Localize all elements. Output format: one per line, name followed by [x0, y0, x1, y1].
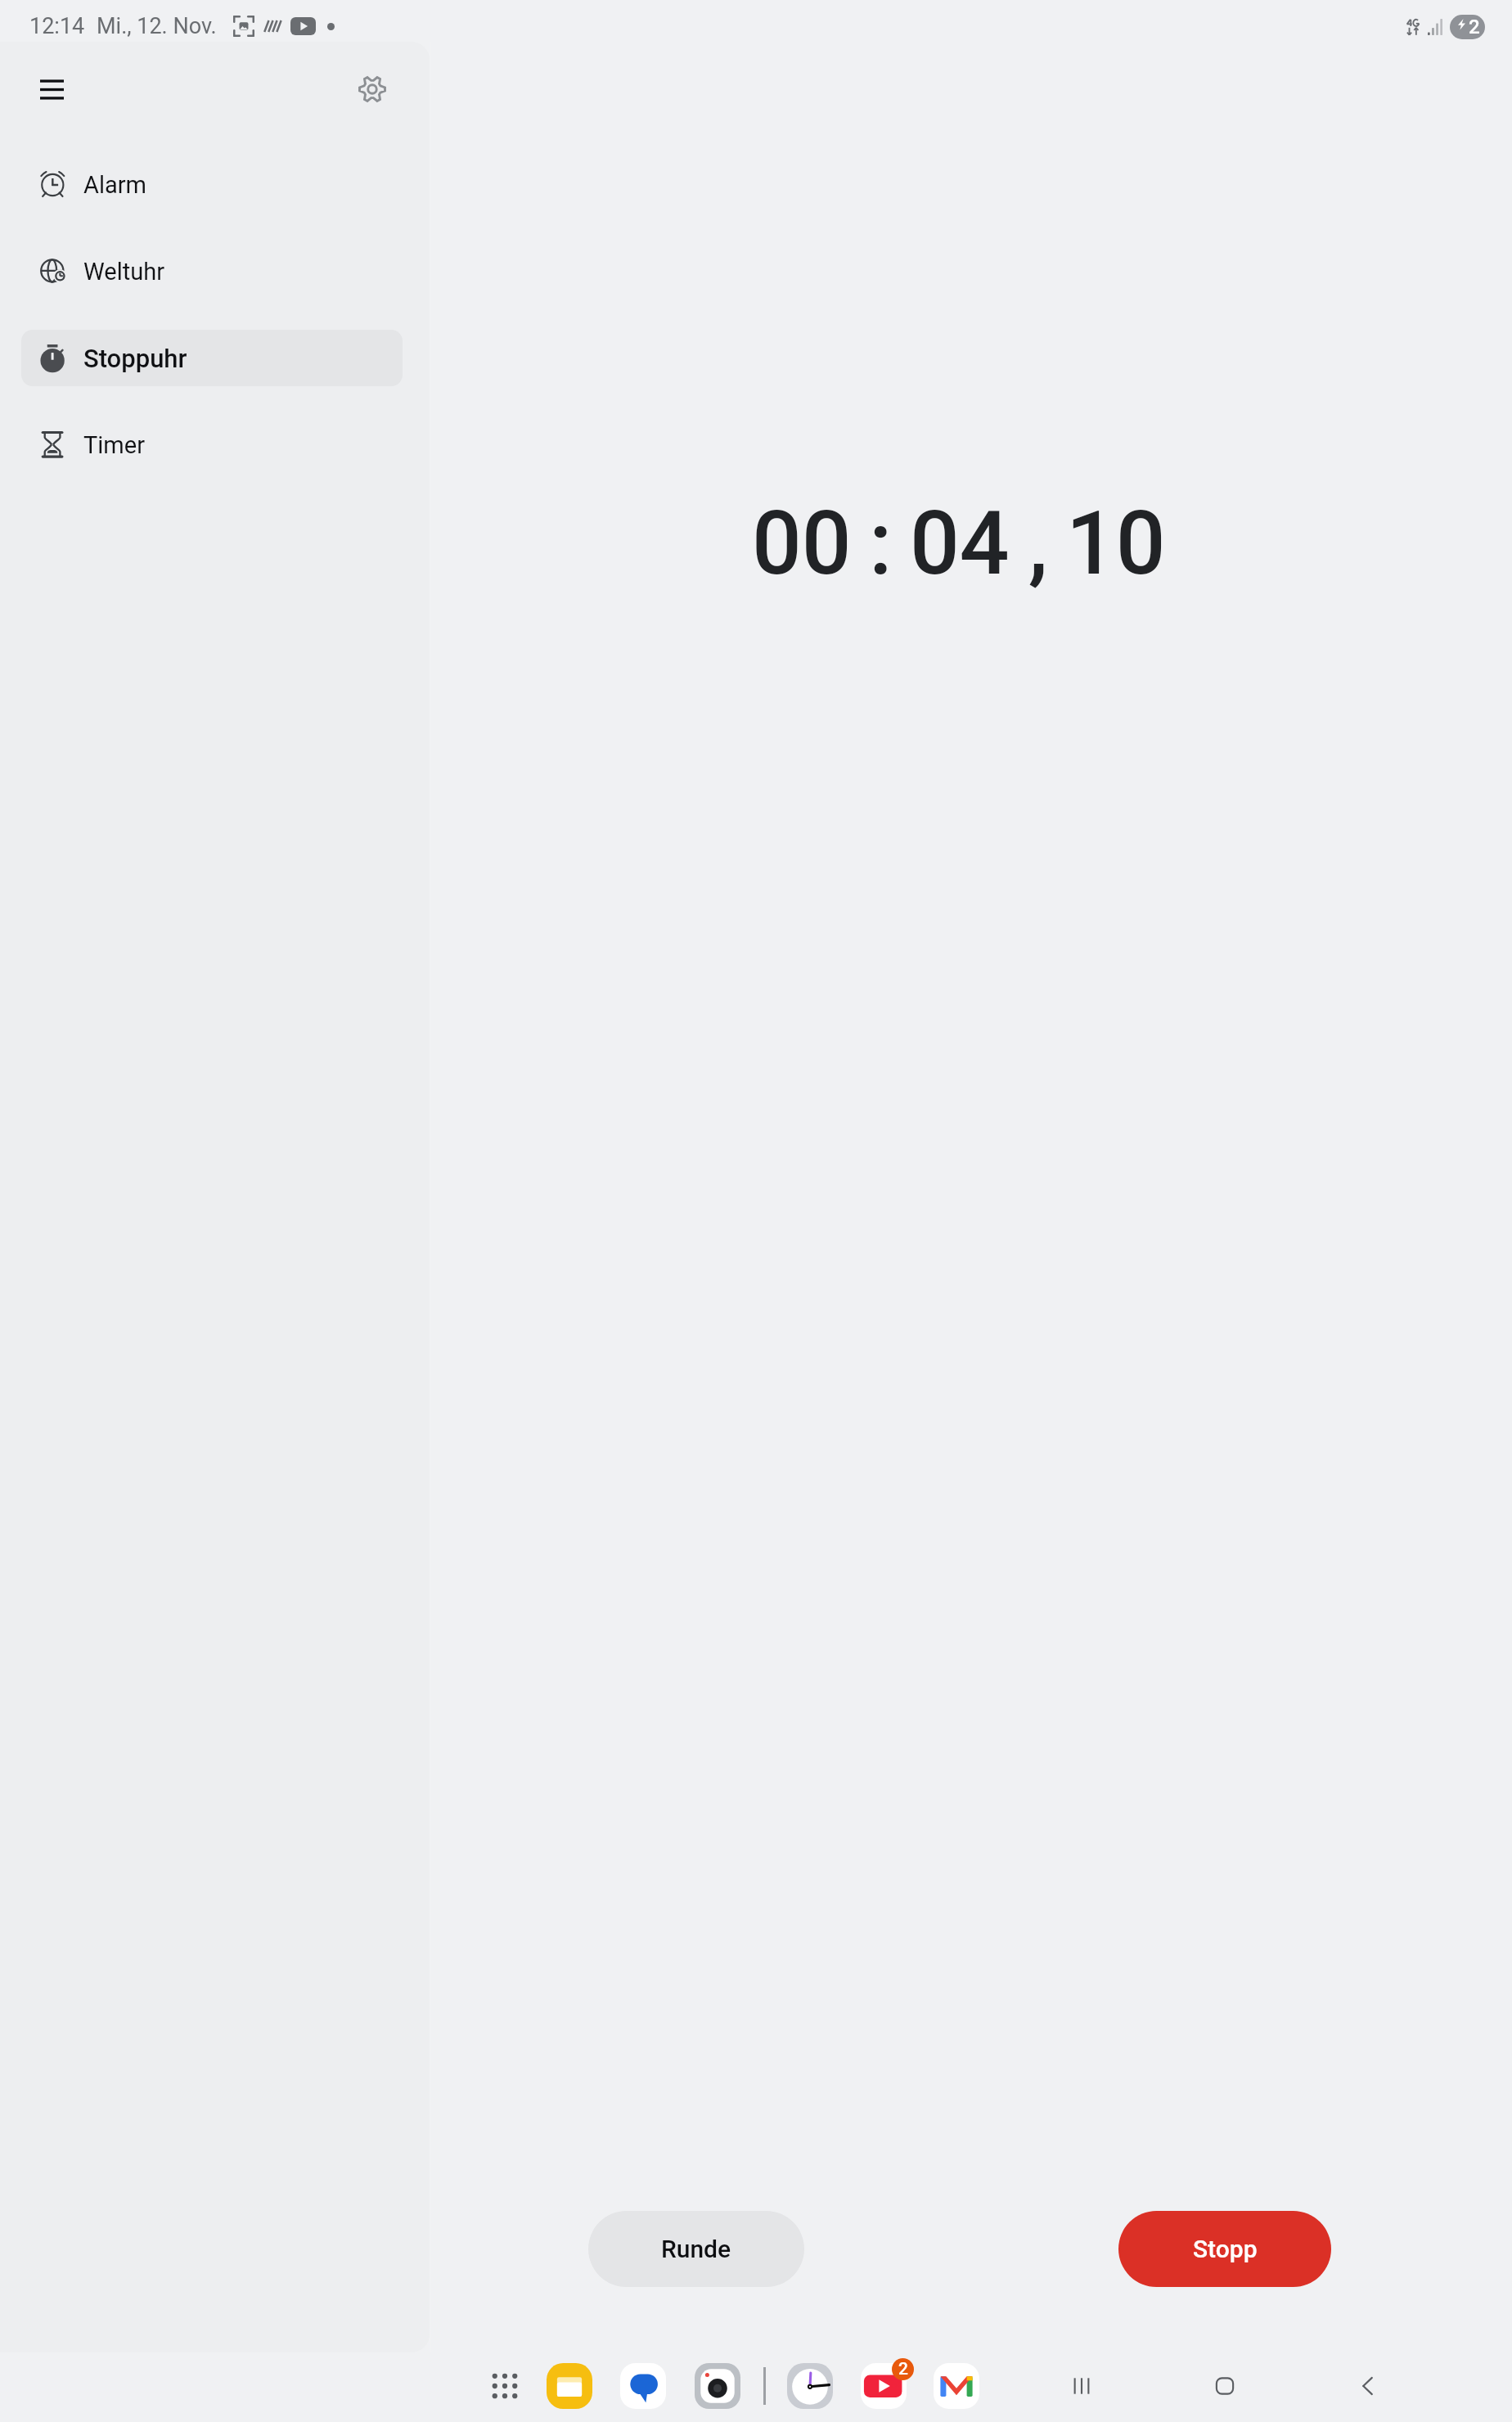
button[interactable]: Camera [682, 2350, 754, 2422]
button[interactable]: Recents [1042, 2347, 1121, 2422]
staticText: Mi., 12. Nov. [97, 13, 217, 39]
staticText: Alarm [83, 171, 147, 199]
staticText: Weltuhr [83, 258, 164, 286]
staticText: , [1028, 493, 1048, 595]
staticText: Runde [661, 2235, 731, 2263]
staticText: 2 [898, 2359, 908, 2379]
button[interactable]: Back [1329, 2347, 1407, 2422]
button[interactable]: Timer [21, 416, 403, 473]
button[interactable]: Runde [588, 2211, 804, 2287]
staticText: 2 [1469, 16, 1480, 38]
staticText: Stopp [1193, 2235, 1258, 2263]
staticText: 12:14 [29, 13, 85, 39]
button[interactable]: Alarm [21, 156, 403, 213]
staticText: Stoppuhr [83, 344, 187, 373]
staticText: 10 [1066, 493, 1166, 595]
button[interactable]: YouTube [848, 2350, 920, 2422]
button[interactable]: Home [1186, 2347, 1264, 2422]
staticText: Timer [83, 431, 145, 459]
staticText: 04 [910, 493, 1010, 595]
button[interactable]: Clock [774, 2350, 846, 2422]
staticText: : [869, 493, 893, 595]
staticText: 00 [752, 493, 852, 595]
button[interactable]: Stopp [1118, 2211, 1331, 2287]
button[interactable]: Gmail [920, 2350, 992, 2422]
button[interactable]: Menu [25, 63, 78, 115]
button[interactable]: Settings [346, 63, 398, 115]
button[interactable]: Stoppuhr [21, 330, 403, 386]
button[interactable]: Weltuhr [21, 243, 403, 299]
button[interactable]: Apps [469, 2350, 541, 2422]
button[interactable]: Messages [607, 2350, 679, 2422]
button[interactable]: My Files [533, 2350, 605, 2422]
